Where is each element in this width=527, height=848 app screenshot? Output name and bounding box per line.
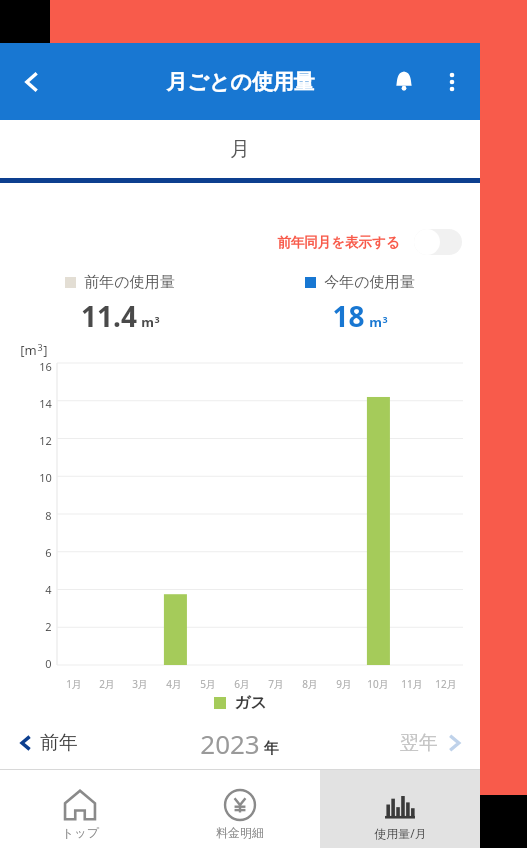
staticText: 6: [45, 545, 52, 560]
staticText: 前年同月を表示する: [277, 234, 400, 251]
staticText: 3: [37, 341, 43, 353]
button[interactable]: 前年同月を表示する: [273, 225, 466, 259]
staticText: 10月: [367, 677, 389, 691]
button[interactable]: 翌年: [279, 717, 480, 769]
staticText: 8月: [302, 677, 318, 691]
staticText: 月ごとの使用量: [166, 69, 315, 95]
staticText: 11.4: [81, 297, 137, 335]
staticText: 使用量/月: [374, 825, 427, 841]
staticText: m: [141, 313, 154, 331]
staticText: 2023: [200, 726, 260, 761]
button[interactable]: 前年: [0, 717, 200, 769]
staticText: トップ: [62, 825, 99, 840]
staticText: 12: [39, 433, 52, 448]
staticText: 3: [154, 313, 160, 325]
staticText: 3月: [132, 677, 148, 691]
staticText: 2月: [99, 677, 115, 691]
staticText: 1月: [66, 677, 82, 691]
staticText: 2: [45, 619, 52, 634]
staticText: 0: [45, 656, 52, 671]
staticText: 14: [39, 396, 52, 411]
staticText: ガス: [234, 693, 267, 713]
staticText: 9月: [336, 677, 352, 691]
staticText: 年: [264, 739, 279, 758]
button[interactable]: トップ: [0, 770, 160, 848]
button[interactable]: 料金明細: [160, 770, 320, 848]
button[interactable]: 使用量/月: [320, 770, 480, 848]
button[interactable]: Back: [0, 43, 64, 120]
staticText: 前年: [40, 731, 78, 755]
staticText: m: [369, 313, 382, 331]
staticText: 3: [382, 313, 388, 325]
staticText: [m: [20, 341, 37, 359]
staticText: 8: [45, 508, 52, 523]
staticText: 翌年: [400, 731, 438, 755]
staticText: 12月: [435, 677, 457, 691]
staticText: 5月: [200, 677, 216, 691]
staticText: 10: [39, 470, 52, 485]
staticText: 6月: [234, 677, 250, 691]
staticText: ]: [43, 341, 48, 359]
staticText: 今年の使用量: [324, 273, 415, 292]
staticText: 7月: [268, 677, 284, 691]
staticText: 11月: [401, 677, 423, 691]
staticText: 4: [45, 582, 52, 597]
staticText: 前年の使用量: [84, 273, 175, 292]
staticText: 18: [332, 297, 365, 335]
staticText: 4月: [166, 677, 182, 691]
staticText: 16: [39, 359, 52, 374]
staticText: 料金明細: [216, 825, 264, 840]
button[interactable]: 月: [0, 120, 480, 178]
staticText: 月: [230, 137, 250, 162]
button[interactable]: Notifications: [378, 56, 430, 108]
button[interactable]: More options: [430, 60, 474, 104]
